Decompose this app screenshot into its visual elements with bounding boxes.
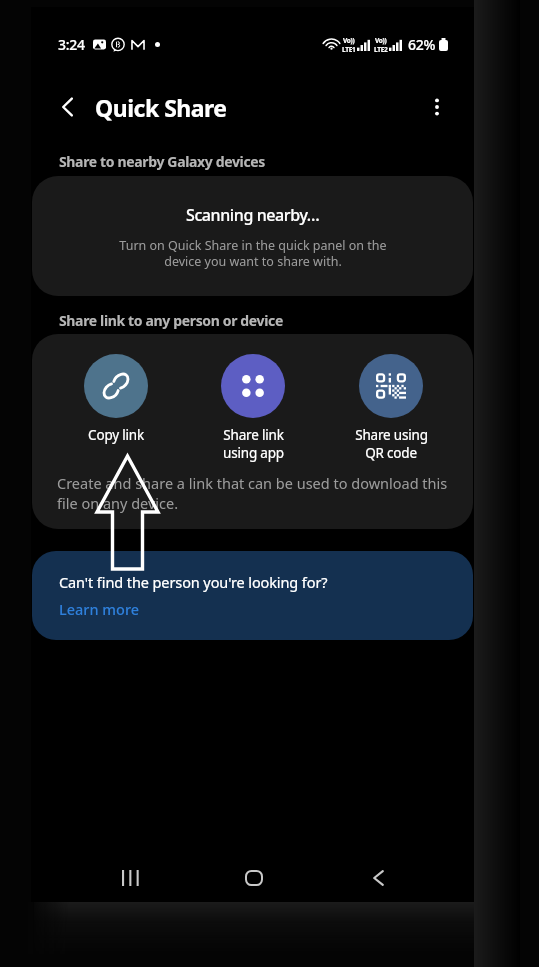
button[interactable]: Recent apps	[102, 850, 158, 906]
staticText: Share link to any person or device	[59, 311, 283, 330]
staticText: Share using	[355, 426, 428, 444]
button[interactable]: Navigate up	[45, 84, 91, 130]
staticText: 3:24	[58, 35, 85, 54]
staticText: LTE2	[374, 45, 388, 54]
staticText: Turn on Quick Share in the quick panel o…	[119, 237, 387, 269]
staticText: using app	[223, 444, 284, 462]
staticText: Scanning nearby…	[186, 204, 320, 226]
staticText: Vo))	[375, 36, 387, 45]
button[interactable]: Share link	[189, 354, 317, 462]
staticText: Copy link	[88, 426, 144, 444]
staticText: Vo))	[343, 36, 355, 45]
staticText: LTE1	[342, 45, 356, 54]
staticText: Create and share a link that can be used…	[57, 473, 448, 514]
button[interactable]: More options	[414, 84, 460, 130]
staticText: Can't find the person you're looking for…	[59, 572, 328, 592]
button[interactable]: Share using	[327, 354, 455, 462]
button[interactable]: Can't find the person you're looking for…	[32, 551, 473, 640]
staticText: Share link	[223, 426, 284, 444]
staticText: Quick Share	[95, 92, 227, 123]
button[interactable]: Copy link	[52, 354, 180, 444]
button[interactable]: Home	[226, 850, 282, 906]
staticText: QR code	[365, 444, 417, 462]
staticText: Learn more	[59, 599, 140, 619]
button[interactable]: Back	[350, 850, 406, 906]
staticText: Share to nearby Galaxy devices	[59, 152, 265, 171]
staticText: 62%	[408, 35, 436, 54]
